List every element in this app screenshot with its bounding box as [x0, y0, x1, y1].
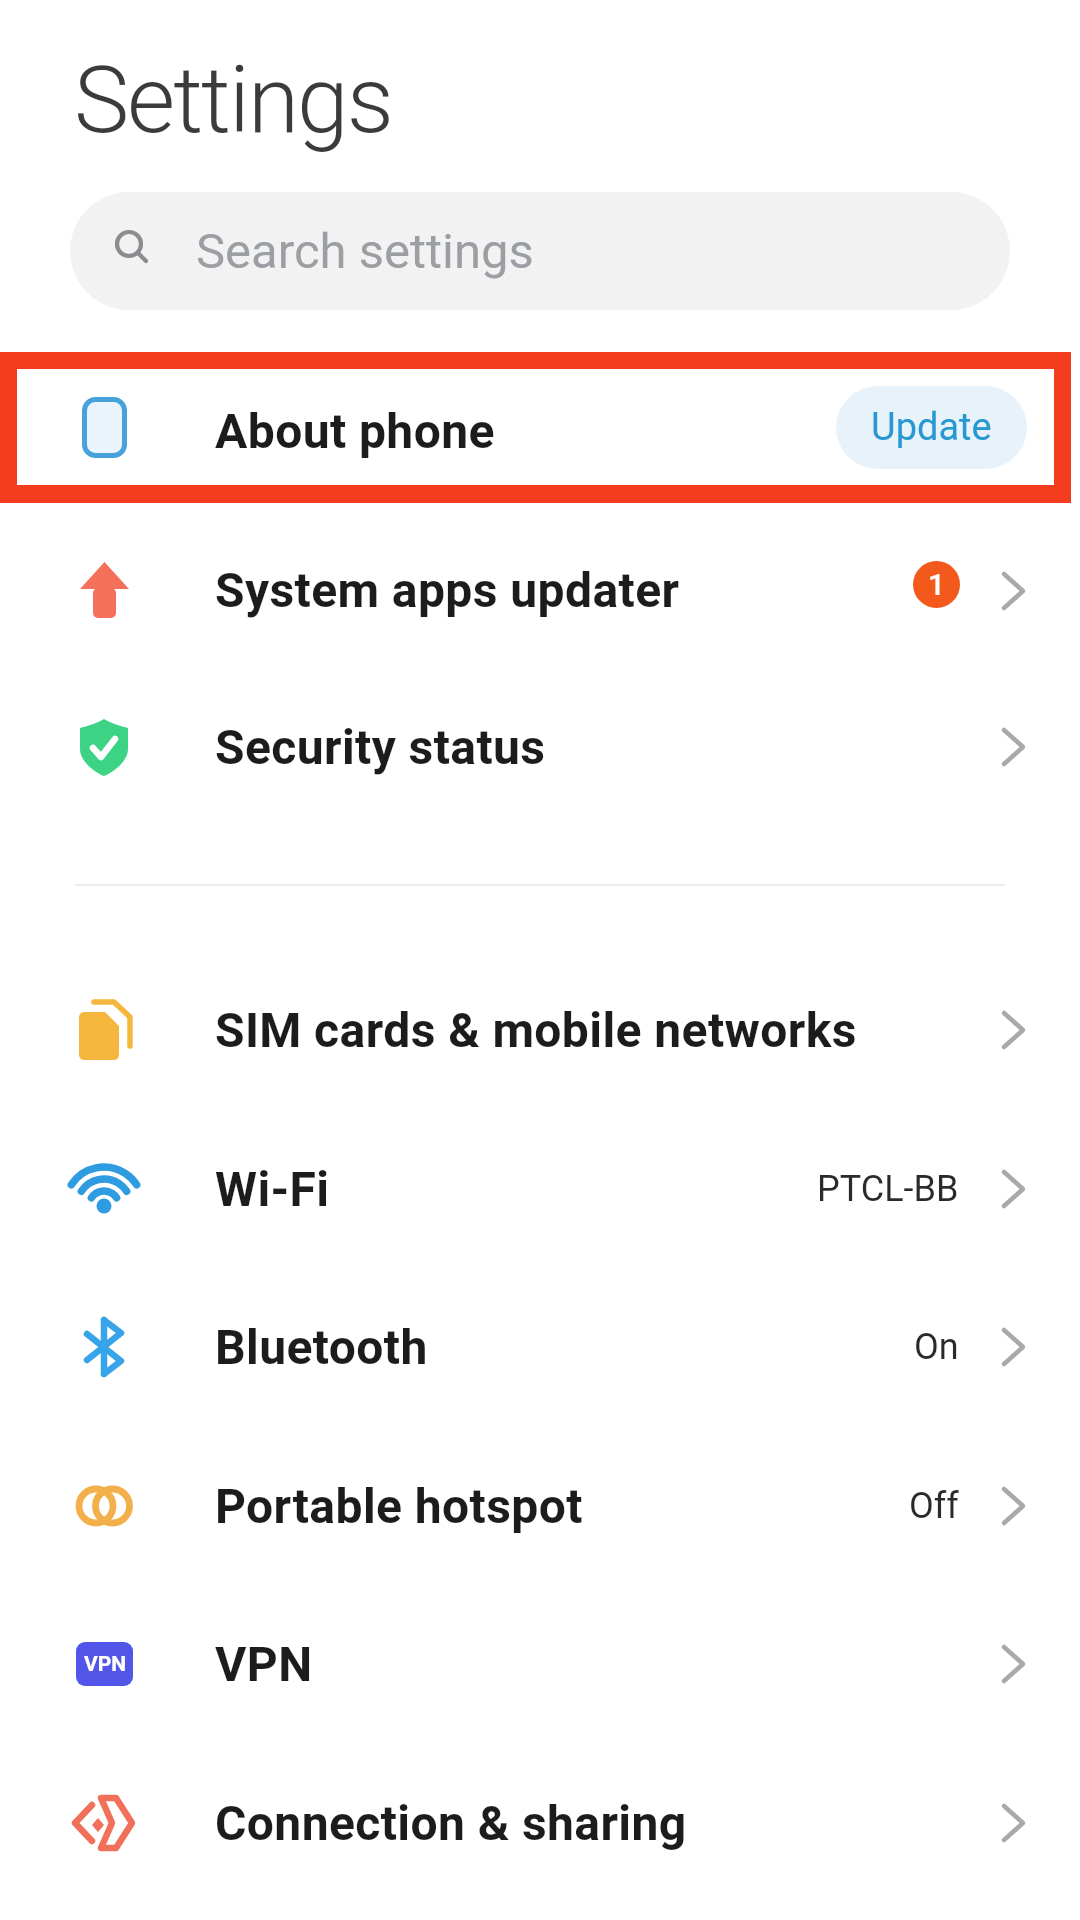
staticText: VPN [215, 1636, 313, 1692]
button[interactable]: System apps updater [0, 511, 1080, 669]
staticText: On [914, 1326, 959, 1368]
button[interactable]: SIM cards & mobile networks [0, 951, 1080, 1109]
staticText: Search settings [196, 223, 534, 280]
staticText: About phone [215, 403, 495, 459]
staticText: Connection & sharing [215, 1795, 687, 1851]
button[interactable]: VPN [0, 1585, 1080, 1743]
staticText: System apps updater [215, 562, 680, 618]
button[interactable]: Bluetooth [0, 1268, 1080, 1426]
button[interactable]: Search settings [70, 192, 1010, 310]
button[interactable]: Wi-Fi [0, 1110, 1080, 1268]
staticText: PTCL-BB [817, 1168, 959, 1210]
staticText: Off [909, 1485, 959, 1527]
button[interactable]: Portable hotspot [0, 1427, 1080, 1585]
button[interactable]: Security status [0, 668, 1080, 826]
button[interactable]: Connection & sharing [0, 1744, 1080, 1902]
button[interactable]: Update [836, 386, 1027, 469]
staticText: Bluetooth [215, 1319, 428, 1375]
staticText: VPN [84, 1652, 127, 1677]
staticText: Wi-Fi [215, 1161, 330, 1217]
staticText: 1 [928, 567, 946, 602]
staticText: SIM cards & mobile networks [215, 1002, 857, 1058]
staticText: Settings [74, 46, 392, 155]
staticText: Update [871, 405, 992, 450]
button[interactable]: About phone [0, 352, 1080, 503]
staticText: Portable hotspot [215, 1478, 583, 1534]
staticText: Security status [215, 719, 546, 775]
